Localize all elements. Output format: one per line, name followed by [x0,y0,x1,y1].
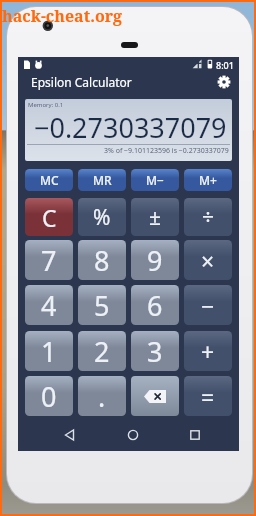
staticText: −0.2730337079 [34,109,227,146]
staticText: C [42,202,57,233]
button[interactable]: Back [54,419,86,451]
staticText: hack-cheat.org [2,5,123,27]
button[interactable]: 5 [78,285,126,325]
staticText: 8:01 [216,59,234,71]
staticText: ± [149,203,162,232]
button[interactable]: MR [78,169,126,191]
button[interactable]: Home [117,419,149,451]
staticText: 9 [147,242,163,279]
button[interactable]: = [184,376,232,416]
staticText: 0 [41,378,57,415]
button[interactable]: . [78,376,126,416]
staticText: 4 [41,287,57,324]
button[interactable]: ± [131,198,179,236]
button[interactable]: − [184,285,232,325]
staticText: Memory: 0.1 [28,101,64,109]
button[interactable]: 0 [25,376,73,416]
staticText: ÷ [202,203,215,232]
staticText: 6 [147,287,163,324]
staticText: M+ [199,172,217,188]
button[interactable]: MC [25,169,73,191]
button[interactable]: M+ [184,169,232,191]
button[interactable]: Recents [179,419,211,451]
staticText: 3 [147,333,163,370]
button[interactable]: M− [131,169,179,191]
button[interactable]: 1 [25,331,73,371]
staticText: % [93,203,111,232]
staticText: MC [40,172,59,188]
button[interactable]: + [184,331,232,371]
staticText: = [201,381,215,412]
button[interactable]: Settings [215,73,233,91]
button[interactable]: 7 [25,240,73,280]
button[interactable]: 4 [25,285,73,325]
staticText: + [201,336,215,367]
button[interactable]: 3 [131,331,179,371]
button[interactable]: 9 [131,240,179,280]
staticText: 3% of −9.101123596 is −0.2730337079 [104,146,229,156]
button[interactable]: 6 [131,285,179,325]
button[interactable]: C [25,198,73,236]
staticText: 1 [41,333,57,370]
button[interactable]: % [78,198,126,236]
staticText: − [201,290,215,321]
button[interactable]: Backspace [131,376,179,416]
staticText: MR [93,172,112,188]
staticText: M− [146,172,164,188]
staticText: Epsilon Calculator [31,74,132,90]
staticText: 8 [94,242,110,279]
staticText: 2 [94,333,110,370]
staticText: × [201,245,215,276]
staticText: 5 [94,287,110,324]
staticText: 7 [41,242,57,279]
staticText: . [98,378,106,415]
button[interactable]: 2 [78,331,126,371]
button[interactable]: ÷ [184,198,232,236]
button[interactable]: × [184,240,232,280]
button[interactable]: 8 [78,240,126,280]
